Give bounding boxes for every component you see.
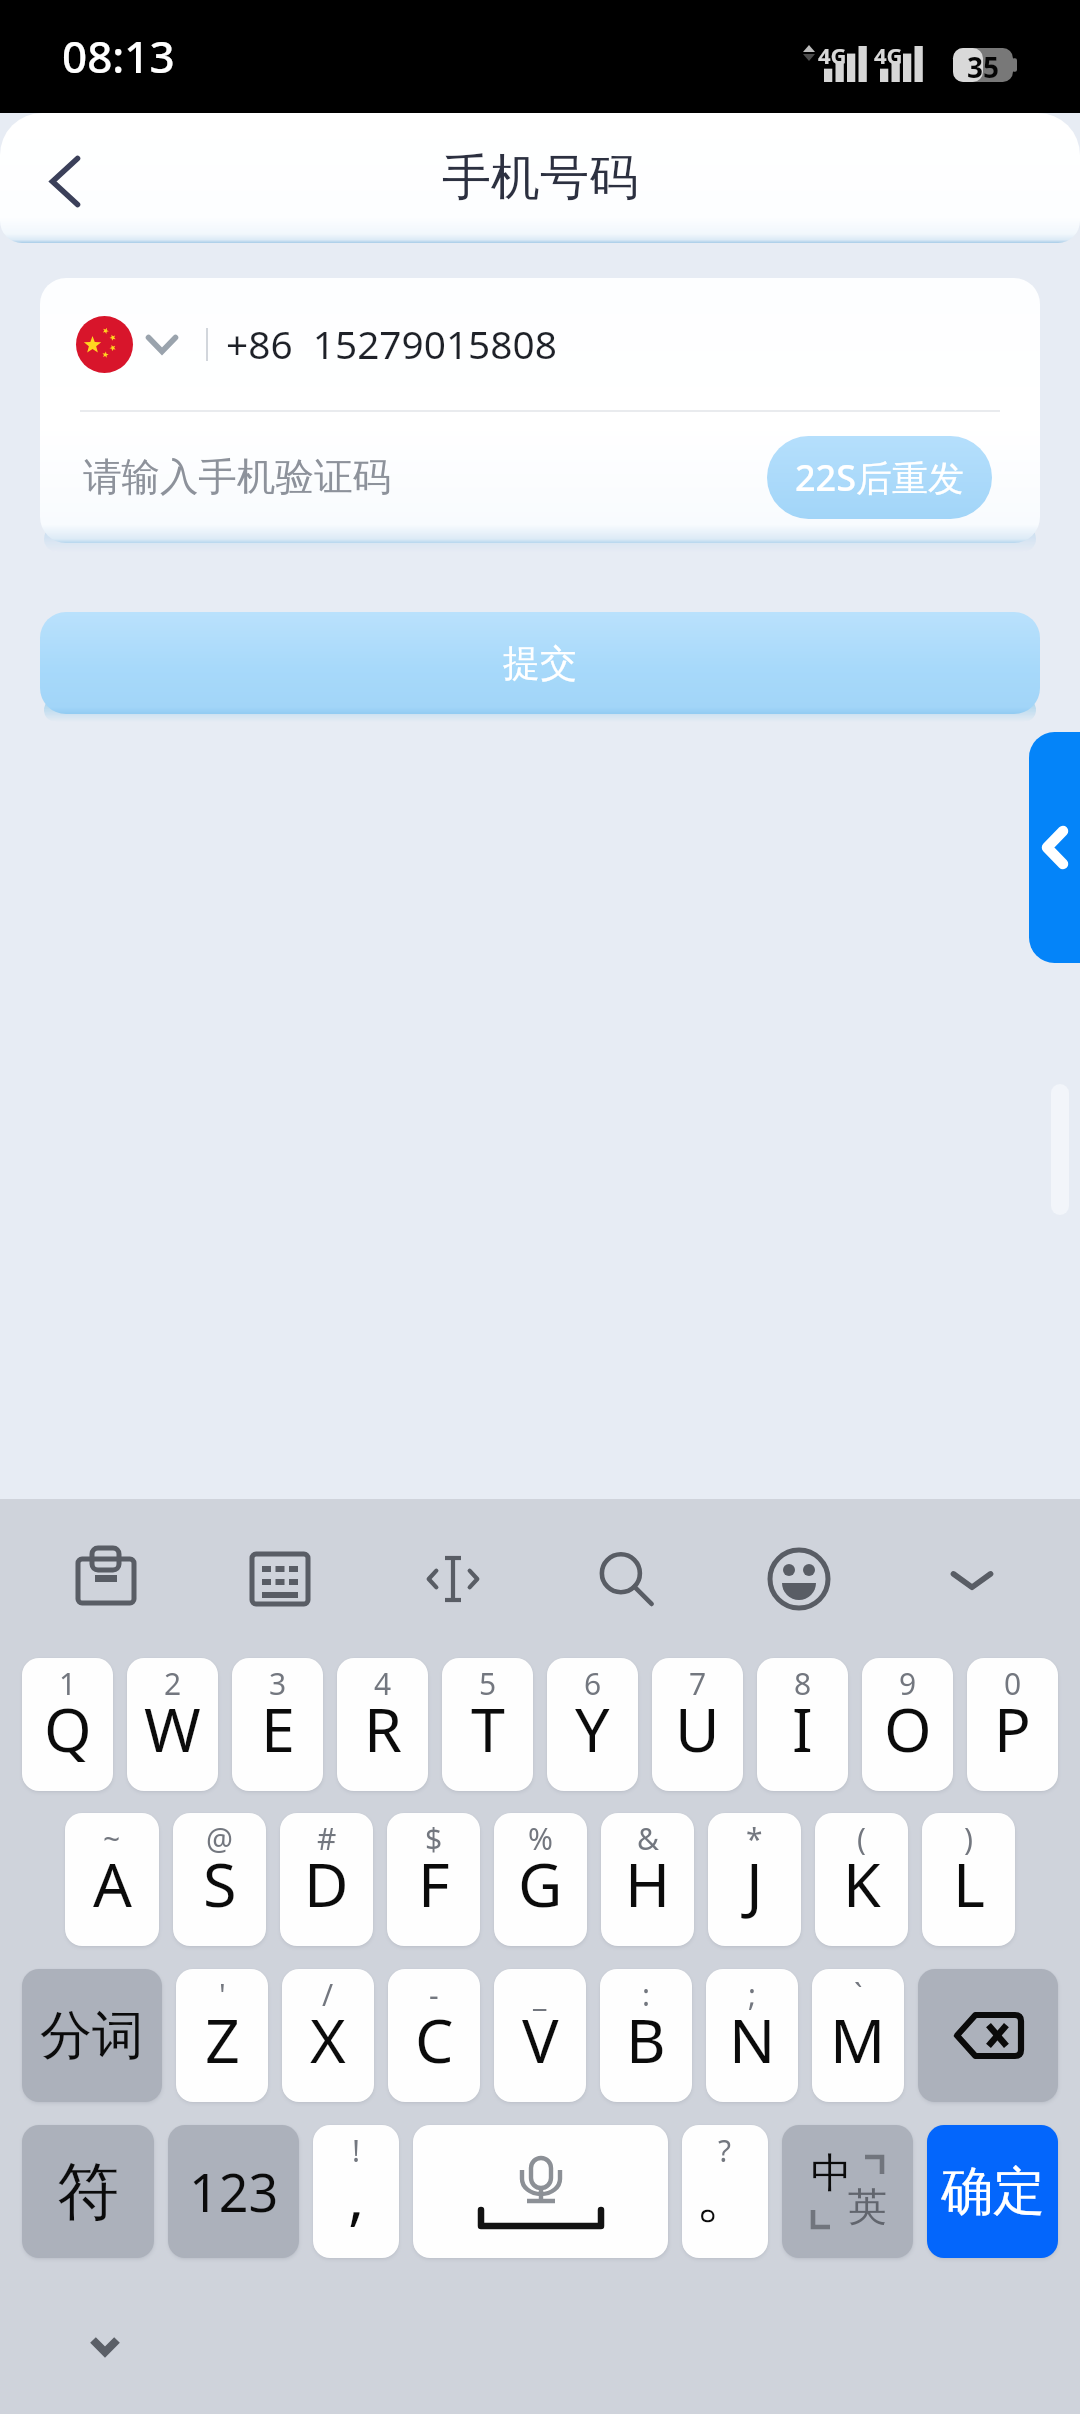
staticText: 请输入手机验证码	[83, 453, 391, 502]
staticText: E	[261, 1687, 295, 1770]
staticText: &	[637, 1818, 659, 1859]
button[interactable]: Search	[539, 1499, 712, 1658]
button[interactable]: Hide keyboard	[885, 1499, 1058, 1658]
staticText: C	[415, 1998, 454, 2081]
staticText: S	[203, 1842, 237, 1925]
button[interactable]: 1	[22, 1658, 113, 1791]
staticText: 手机号码	[442, 147, 638, 209]
staticText: P	[994, 1687, 1031, 1770]
button[interactable]: Keyboard layout	[194, 1499, 366, 1658]
button[interactable]: @	[173, 1813, 266, 1946]
staticText: X	[310, 1998, 346, 2081]
staticText: `	[854, 1974, 863, 2015]
staticText: 8	[794, 1663, 812, 1704]
button[interactable]: :	[600, 1969, 692, 2102]
button[interactable]: 9	[862, 1658, 953, 1791]
staticText: 4G	[818, 40, 847, 70]
staticText: _	[533, 1974, 547, 2015]
button[interactable]: &	[601, 1813, 694, 1946]
button[interactable]: Switch Chinese English input	[782, 2125, 913, 2258]
button[interactable]: ;	[706, 1969, 798, 2102]
staticText: T	[471, 1687, 505, 1770]
button[interactable]: 123	[168, 2125, 299, 2258]
button[interactable]: Back	[15, 131, 115, 231]
staticText: !	[352, 2130, 361, 2171]
staticText: 7	[689, 1663, 707, 1704]
staticText: %	[528, 1818, 553, 1859]
staticText: D	[304, 1842, 349, 1925]
staticText: 3	[269, 1663, 287, 1704]
button[interactable]: _	[494, 1969, 586, 2102]
button[interactable]: *	[708, 1813, 801, 1946]
staticText: 。	[695, 2157, 756, 2234]
staticText: 英	[848, 2182, 887, 2231]
staticText: 22S后重发	[795, 453, 964, 502]
staticText: R	[364, 1687, 402, 1770]
button[interactable]: 2	[127, 1658, 218, 1791]
staticText: 9	[899, 1663, 917, 1704]
button[interactable]: 5	[442, 1658, 533, 1791]
staticText: Q	[44, 1687, 92, 1770]
button[interactable]: Move cursor	[366, 1499, 539, 1658]
staticText: Y	[575, 1687, 610, 1770]
staticText: 08:13	[62, 26, 175, 86]
button[interactable]: ~	[65, 1813, 159, 1946]
button[interactable]: %	[494, 1813, 587, 1946]
button[interactable]: 0	[967, 1658, 1058, 1791]
staticText: -	[429, 1974, 439, 2015]
button[interactable]: '	[176, 1969, 268, 2102]
button[interactable]: Expand side panel	[1029, 732, 1080, 963]
button[interactable]: 提交	[40, 612, 1040, 714]
staticText: 分词	[40, 2003, 144, 2069]
staticText: 6	[584, 1663, 602, 1704]
button[interactable]: Backspace	[918, 1969, 1058, 2102]
staticText: 4G	[874, 40, 903, 70]
staticText: K	[843, 1842, 881, 1925]
button[interactable]: Collapse keyboard	[65, 2306, 145, 2386]
staticText: O	[884, 1687, 932, 1770]
staticText: 中	[811, 2148, 852, 2200]
button[interactable]: )	[922, 1813, 1015, 1946]
button[interactable]: !	[313, 2125, 399, 2258]
button[interactable]: Select country code	[76, 316, 178, 373]
button[interactable]: 22S后重发	[767, 436, 992, 519]
staticText: 5	[479, 1663, 497, 1704]
staticText: W	[144, 1687, 201, 1770]
button[interactable]: 7	[652, 1658, 743, 1791]
button[interactable]: (	[815, 1813, 908, 1946]
staticText: /	[322, 1974, 334, 2015]
button[interactable]: Clipboard	[22, 1499, 194, 1658]
staticText: 确定	[941, 2159, 1045, 2225]
staticText: ;	[748, 1974, 757, 2015]
button[interactable]: Space	[413, 2125, 668, 2258]
button[interactable]: 符	[22, 2125, 154, 2258]
staticText: L	[953, 1842, 985, 1925]
button[interactable]: 8	[757, 1658, 848, 1791]
button[interactable]: $	[387, 1813, 480, 1946]
staticText: 35	[967, 48, 1000, 82]
staticText: F	[418, 1842, 450, 1925]
staticText: M	[830, 1998, 886, 2081]
button[interactable]: Emoji	[712, 1499, 885, 1658]
button[interactable]: 确定	[927, 2125, 1058, 2258]
button[interactable]: 3	[232, 1658, 323, 1791]
button[interactable]: ?	[682, 2125, 768, 2258]
button[interactable]: 分词	[22, 1969, 162, 2102]
staticText: @	[206, 1818, 233, 1859]
staticText: 提交	[503, 640, 577, 687]
staticText: *	[746, 1818, 763, 1859]
staticText: U	[675, 1687, 720, 1770]
staticText: )	[964, 1818, 973, 1859]
button[interactable]: -	[388, 1969, 480, 2102]
button[interactable]: `	[812, 1969, 904, 2102]
staticText: A	[93, 1842, 132, 1925]
button[interactable]: 6	[547, 1658, 638, 1791]
button[interactable]: /	[282, 1969, 374, 2102]
staticText: '	[219, 1974, 226, 2015]
button[interactable]: 4	[337, 1658, 428, 1791]
staticText: 0	[1004, 1663, 1022, 1704]
staticText: H	[625, 1842, 671, 1925]
button[interactable]: #	[280, 1813, 373, 1946]
staticText: $	[425, 1818, 443, 1859]
staticText: 1	[59, 1663, 77, 1704]
